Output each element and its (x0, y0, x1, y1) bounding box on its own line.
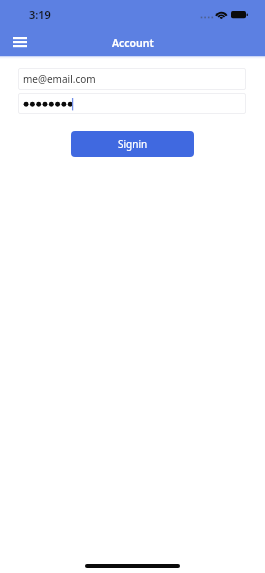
staticText: me@email.com (23, 72, 96, 86)
staticText: 3:19 (29, 7, 51, 22)
button[interactable]: me@email.com (18, 68, 246, 90)
button[interactable] (18, 93, 246, 114)
staticText: Account (112, 36, 154, 50)
staticText: Signin (118, 137, 148, 151)
button[interactable]: Open navigation menu (6, 30, 34, 54)
button[interactable]: Signin (71, 131, 194, 157)
